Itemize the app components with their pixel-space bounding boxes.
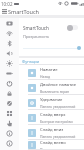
button[interactable]: Power xyxy=(0,78,19,88)
staticText: Предыдущее xyxy=(40,147,62,150)
staticText: Функции xyxy=(22,59,40,64)
staticText: Двойное нажатие xyxy=(40,82,77,88)
staticText: SmartTouch xyxy=(8,8,39,15)
staticText: Панель уведомлений xyxy=(40,104,76,109)
staticText: Панель уведомлений xyxy=(40,134,76,139)
button[interactable]: Слайд влево xyxy=(19,140,84,150)
staticText: SmartTouch xyxy=(23,25,49,31)
staticText: Выключить экран xyxy=(40,89,70,94)
button[interactable]: Нажатие xyxy=(19,65,84,80)
staticText: Слайд вверх xyxy=(40,112,66,118)
staticText: Быстрые настройки xyxy=(40,119,73,124)
button[interactable]: Volume xyxy=(0,48,19,58)
button[interactable]: Screenshot xyxy=(0,18,19,28)
button[interactable]: Слайд вниз xyxy=(19,125,84,140)
button[interactable]: Lock xyxy=(0,88,19,98)
button[interactable]: Battery xyxy=(0,68,19,78)
button[interactable]: Info xyxy=(0,128,19,138)
button[interactable]: Brightness xyxy=(0,58,19,68)
staticText: Удержание xyxy=(40,97,63,103)
button[interactable]: Двойное нажатие xyxy=(19,80,84,95)
button[interactable]: Apps xyxy=(0,108,19,118)
button[interactable]: More xyxy=(0,138,19,148)
staticText: 10:02 xyxy=(1,1,13,7)
button[interactable]: Touch xyxy=(0,118,19,128)
staticText: Прозрачность xyxy=(23,34,50,39)
button[interactable]: Слайд вверх xyxy=(19,110,84,125)
button[interactable]: Bluetooth xyxy=(0,38,19,48)
button[interactable]: Удержание xyxy=(19,95,84,110)
staticText: Слайд влево xyxy=(40,140,66,146)
button[interactable]: Transparency slider xyxy=(19,43,84,53)
button[interactable]: Toggle SmartTouch xyxy=(67,24,78,31)
staticText: Назад xyxy=(40,74,51,79)
staticText: Слайд вниз xyxy=(40,127,64,133)
button[interactable]: Rotate xyxy=(0,98,19,108)
staticText: Нажатие xyxy=(40,67,58,73)
button[interactable]: Open navigation menu xyxy=(0,7,8,15)
button[interactable]: Wi-Fi xyxy=(0,28,19,38)
button[interactable]: SmartTouch xyxy=(19,18,84,56)
